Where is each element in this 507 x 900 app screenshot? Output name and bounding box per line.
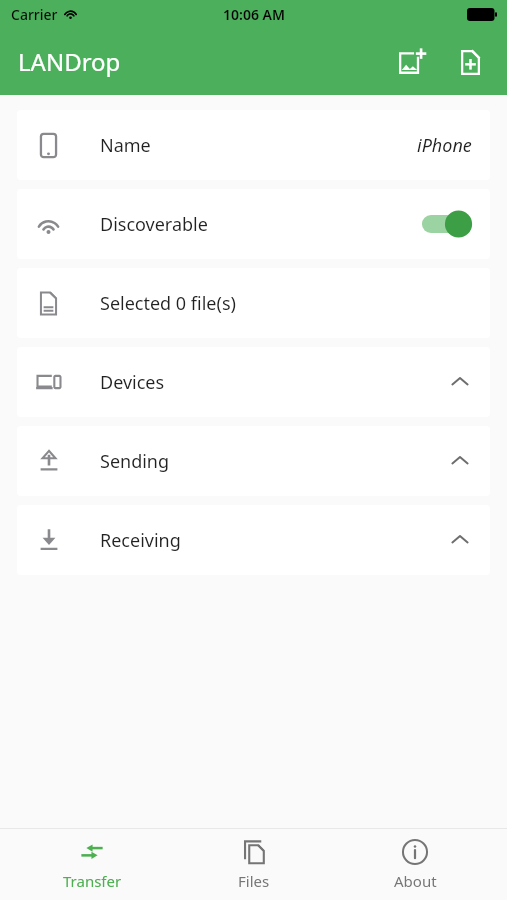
staticText: Receiving	[100, 528, 181, 553]
button[interactable]: Selected 0 file(s)	[17, 268, 490, 338]
button[interactable]: Receiving	[17, 505, 490, 575]
button[interactable]: Add image	[388, 39, 434, 85]
staticText: Selected 0 file(s)	[100, 291, 236, 316]
button[interactable]: Add file	[447, 39, 493, 85]
staticText: Discoverable	[100, 212, 208, 237]
staticText: Sending	[100, 449, 170, 474]
staticText: About	[394, 871, 437, 891]
staticText: Carrier	[11, 5, 58, 24]
button[interactable]: Devices	[17, 347, 490, 417]
button[interactable]: Transfer	[22, 829, 162, 900]
button[interactable]: Files	[184, 829, 324, 900]
staticText: 10:06 AM	[223, 5, 285, 24]
staticText: iPhone	[417, 133, 472, 158]
staticText: LANDrop	[18, 45, 121, 78]
button[interactable]: Sending	[17, 426, 490, 496]
button[interactable]: About	[345, 829, 485, 900]
button[interactable]: Name	[17, 110, 490, 180]
button[interactable]: Discoverable toggle	[418, 207, 474, 241]
button[interactable]: Discoverable	[17, 189, 490, 259]
staticText: Transfer	[63, 871, 122, 891]
staticText: Files	[238, 871, 270, 891]
staticText: Name	[100, 133, 151, 158]
staticText: Devices	[100, 370, 165, 395]
